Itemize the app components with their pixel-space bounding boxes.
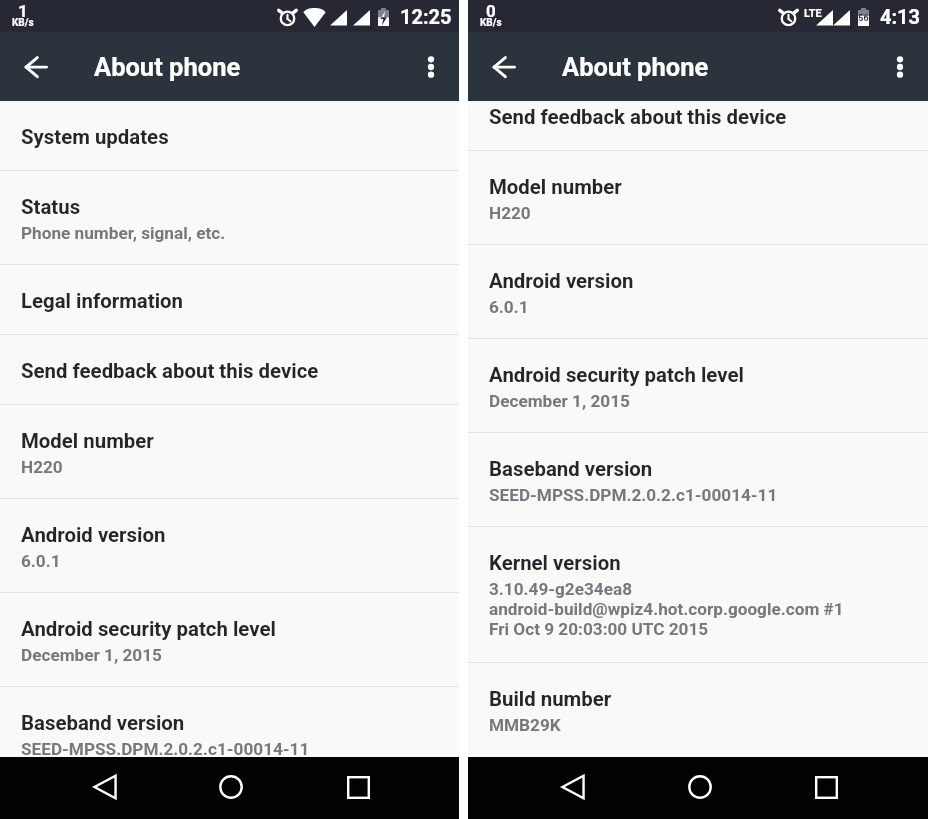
button[interactable]: Send feedback about this device bbox=[468, 101, 928, 151]
button[interactable]: Baseband version bbox=[0, 687, 459, 757]
staticText: Android security patch level bbox=[21, 617, 276, 641]
staticText: Kernel version bbox=[489, 551, 621, 575]
staticText: About phone bbox=[562, 52, 709, 82]
staticText: Android security patch level bbox=[489, 363, 744, 387]
staticText: Android version bbox=[489, 269, 634, 293]
button[interactable]: More options bbox=[407, 43, 455, 91]
staticText: Phone number, signal, etc. bbox=[21, 223, 226, 243]
staticText: 0 bbox=[486, 1, 496, 21]
button[interactable]: Send feedback about this device bbox=[0, 335, 459, 405]
staticText: 56 bbox=[858, 13, 869, 24]
staticText: Android version bbox=[21, 523, 166, 547]
button[interactable]: Legal information bbox=[0, 265, 459, 335]
staticText: H220 bbox=[21, 457, 63, 477]
button[interactable]: Build number bbox=[468, 663, 928, 757]
staticText: SEED-MPSS.DPM.2.0.2.c1-00014-11 bbox=[21, 739, 310, 757]
button[interactable]: Android version bbox=[468, 245, 928, 339]
staticText: 1 bbox=[18, 1, 28, 21]
button[interactable]: Home bbox=[675, 762, 725, 812]
button[interactable]: Model number bbox=[468, 151, 928, 245]
button[interactable]: Recent apps bbox=[333, 762, 383, 812]
button[interactable]: Recent apps bbox=[801, 762, 851, 812]
staticText: Baseband version bbox=[489, 457, 653, 481]
button[interactable]: Android security patch level bbox=[0, 593, 459, 687]
button[interactable]: System updates bbox=[0, 101, 459, 171]
button[interactable]: Android security patch level bbox=[468, 339, 928, 433]
staticText: Model number bbox=[21, 429, 154, 453]
button[interactable]: Back bbox=[548, 762, 598, 812]
button[interactable]: Android version bbox=[0, 499, 459, 593]
staticText: android-build@wpiz4.hot.corp.google.com … bbox=[489, 599, 844, 619]
staticText: 12:25 bbox=[400, 5, 452, 28]
staticText: Status bbox=[21, 195, 81, 219]
staticText: KB/s bbox=[12, 17, 34, 28]
button[interactable]: Kernel version bbox=[468, 527, 928, 663]
staticText: 6.0.1 bbox=[489, 297, 529, 317]
button[interactable]: Baseband version bbox=[468, 433, 928, 527]
staticText: LTE bbox=[804, 7, 822, 20]
staticText: Baseband version bbox=[21, 711, 185, 735]
staticText: System updates bbox=[21, 125, 169, 149]
staticText: Fri Oct 9 20:03:00 UTC 2015 bbox=[489, 619, 709, 639]
button[interactable]: Back bbox=[12, 43, 60, 91]
staticText: H220 bbox=[489, 203, 531, 223]
staticText: SEED-MPSS.DPM.2.0.2.c1-00014-11 bbox=[489, 485, 778, 505]
staticText: Legal information bbox=[21, 289, 183, 313]
button[interactable]: Back bbox=[480, 43, 528, 91]
staticText: Model number bbox=[489, 175, 622, 199]
button[interactable]: Home bbox=[206, 762, 256, 812]
staticText: KB/s bbox=[480, 17, 502, 28]
button[interactable]: More options bbox=[876, 43, 924, 91]
staticText: 3.10.49-g2e34ea8 bbox=[489, 579, 633, 599]
button[interactable]: Back bbox=[80, 762, 130, 812]
staticText: Send feedback about this device bbox=[21, 359, 319, 383]
button[interactable]: Model number bbox=[0, 405, 459, 499]
staticText: MMB29K bbox=[489, 715, 561, 735]
staticText: Send feedback about this device bbox=[489, 105, 787, 129]
staticText: Build number bbox=[489, 687, 612, 711]
staticText: December 1, 2015 bbox=[21, 645, 162, 665]
staticText: 4:13 bbox=[880, 5, 921, 28]
staticText: December 1, 2015 bbox=[489, 391, 630, 411]
staticText: 6.0.1 bbox=[21, 551, 61, 571]
staticText: About phone bbox=[94, 52, 241, 82]
button[interactable]: Status bbox=[0, 171, 459, 265]
